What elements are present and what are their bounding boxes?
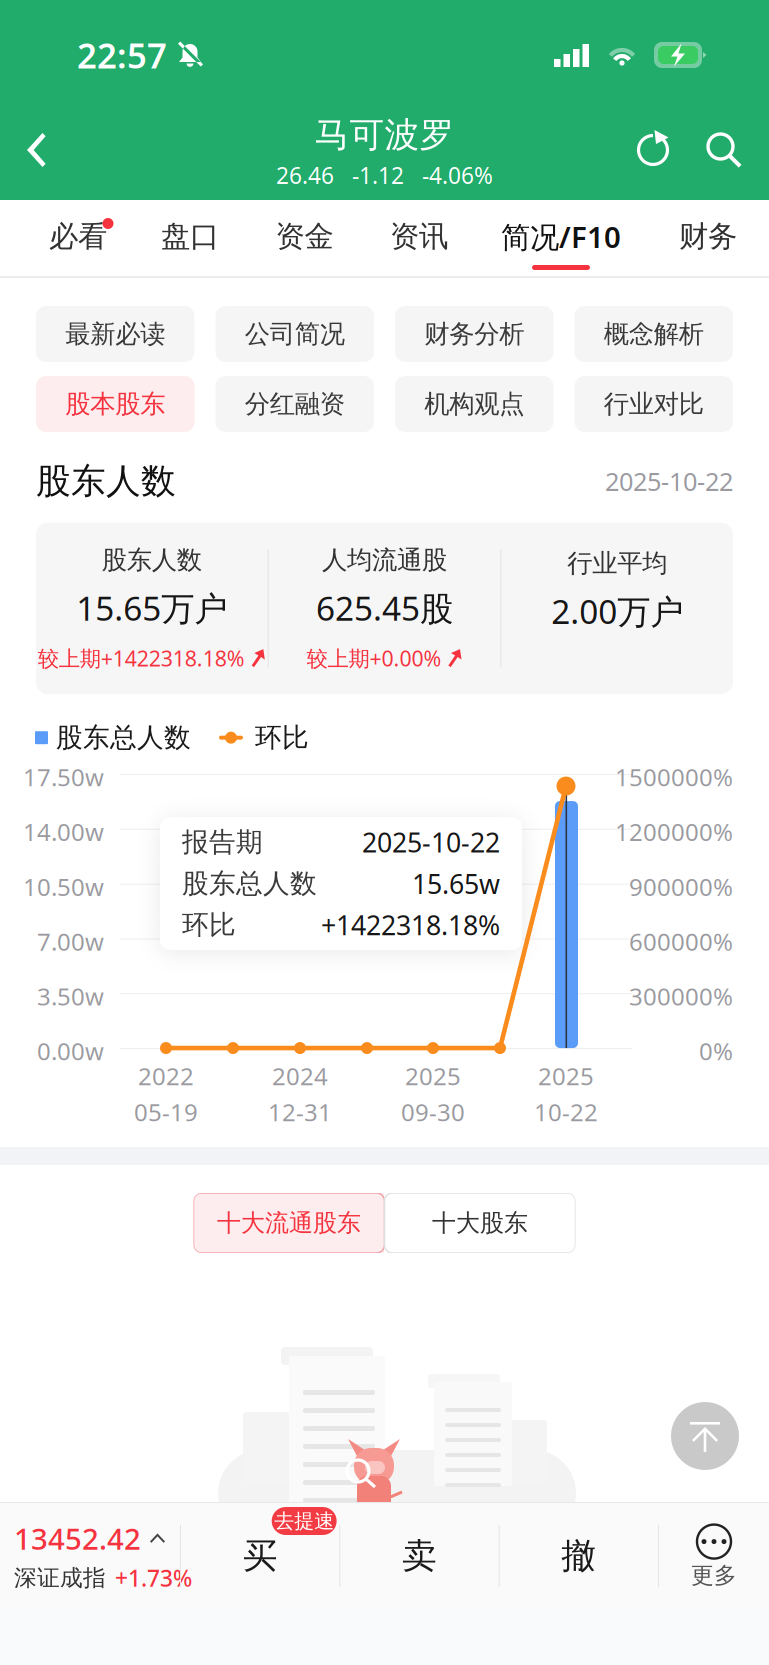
staticText: 公司简况: [245, 318, 345, 349]
staticText: 09-30: [401, 1096, 465, 1128]
staticText: 股东人数: [36, 460, 176, 503]
staticText: 资金: [275, 218, 333, 254]
staticText: 900000%: [629, 871, 733, 902]
staticText: 股东总人数: [182, 867, 317, 900]
staticText: 10-22: [534, 1096, 598, 1128]
staticText: 环比: [255, 721, 309, 754]
staticText: 股东人数: [102, 545, 202, 576]
staticText: 必看: [49, 218, 107, 254]
button[interactable]: 必看: [22, 200, 134, 276]
staticText: 机构观点: [424, 388, 524, 419]
button[interactable]: 更多: [659, 1503, 769, 1609]
staticText: 2022: [138, 1060, 194, 1092]
staticText: 卖: [402, 1535, 437, 1577]
staticText: 1200000%: [615, 816, 733, 848]
staticText: 15.65万户: [76, 586, 227, 630]
button[interactable]: 行业对比: [574, 376, 733, 432]
staticText: 简况/F10: [501, 217, 621, 256]
staticText: 去提速: [274, 1509, 334, 1533]
staticText: 0.00w: [37, 1035, 104, 1067]
staticText: 13452.42: [14, 1519, 141, 1558]
staticText: 分红融资: [245, 388, 345, 419]
staticText: 股东总人数: [56, 721, 191, 754]
staticText: 625.45股: [316, 586, 453, 630]
staticText: 22:57: [77, 32, 167, 78]
staticText: 行业平均: [567, 548, 667, 579]
staticText: 17.50w: [23, 761, 104, 793]
button[interactable]: 公司简况: [215, 306, 374, 362]
staticText: 更多: [691, 1562, 737, 1589]
staticText: 2.00万户: [551, 589, 683, 633]
staticText: 报告期: [182, 826, 263, 859]
button[interactable]: 概念解析: [574, 306, 733, 362]
staticText: 7.00w: [37, 925, 104, 957]
staticText: 人均流通股: [322, 545, 447, 576]
button[interactable]: 财务: [647, 200, 769, 276]
button[interactable]: 十大股东: [384, 1193, 575, 1253]
staticText: +1422318.18%: [321, 907, 500, 943]
button[interactable]: Search: [689, 115, 769, 185]
staticText: 资讯: [390, 218, 448, 254]
staticText: 1500000%: [615, 761, 733, 793]
staticText: 最新必读: [65, 318, 165, 349]
staticText: 2024: [272, 1060, 328, 1092]
staticText: 盘口: [161, 218, 219, 254]
staticText: 财务: [679, 218, 737, 254]
staticText: 撤: [561, 1535, 596, 1577]
staticText: 深证成指: [14, 1564, 106, 1592]
button[interactable]: Scroll to top: [664, 1395, 746, 1477]
button[interactable]: 资金: [246, 200, 363, 276]
staticText: 26.46 -1.12 -4.06%: [276, 160, 493, 190]
staticText: 2025-10-22: [605, 464, 733, 498]
staticText: 12-31: [268, 1096, 332, 1128]
staticText: 十大股东: [432, 1208, 528, 1238]
staticText: 十大流通股东: [217, 1208, 361, 1238]
staticText: 10.50w: [23, 871, 104, 902]
button[interactable]: 13452.42: [0, 1503, 180, 1609]
button[interactable]: 盘口: [134, 200, 246, 276]
staticText: 2025: [405, 1060, 461, 1092]
staticText: 股本股东: [65, 388, 165, 419]
staticText: 600000%: [629, 925, 733, 957]
staticText: 15.65w: [412, 866, 500, 901]
staticText: 300000%: [629, 980, 733, 1012]
staticText: 14.00w: [23, 816, 104, 848]
button[interactable]: 简况/F10: [475, 200, 647, 276]
button[interactable]: 资讯: [363, 200, 475, 276]
staticText: 较上期+0.00%: [306, 644, 441, 672]
button[interactable]: 机构观点: [395, 376, 553, 432]
staticText: 马可波罗: [314, 114, 454, 156]
button[interactable]: 买: [181, 1503, 339, 1609]
staticText: 较上期+1422318.18%: [38, 644, 245, 672]
staticText: 环比: [182, 909, 236, 941]
staticText: 2025-10-22: [362, 824, 500, 860]
staticText: 3.50w: [37, 980, 104, 1012]
staticText: 行业对比: [604, 388, 704, 419]
button[interactable]: 股本股东: [36, 376, 194, 432]
button[interactable]: 财务分析: [395, 306, 553, 362]
button[interactable]: Back: [0, 115, 76, 185]
button[interactable]: 撤: [500, 1503, 658, 1609]
button[interactable]: 分红融资: [215, 376, 374, 432]
staticText: 0%: [699, 1035, 733, 1067]
button[interactable]: 最新必读: [36, 306, 194, 362]
staticText: 财务分析: [424, 318, 524, 349]
button[interactable]: 卖: [340, 1503, 499, 1609]
button[interactable]: 十大流通股东: [193, 1193, 384, 1253]
staticText: 2025: [538, 1060, 594, 1092]
staticText: +1.73%: [115, 1563, 192, 1593]
button[interactable]: Refresh: [619, 115, 689, 185]
staticText: 概念解析: [604, 318, 704, 349]
staticText: 买: [243, 1535, 278, 1577]
staticText: 05-19: [134, 1096, 198, 1128]
